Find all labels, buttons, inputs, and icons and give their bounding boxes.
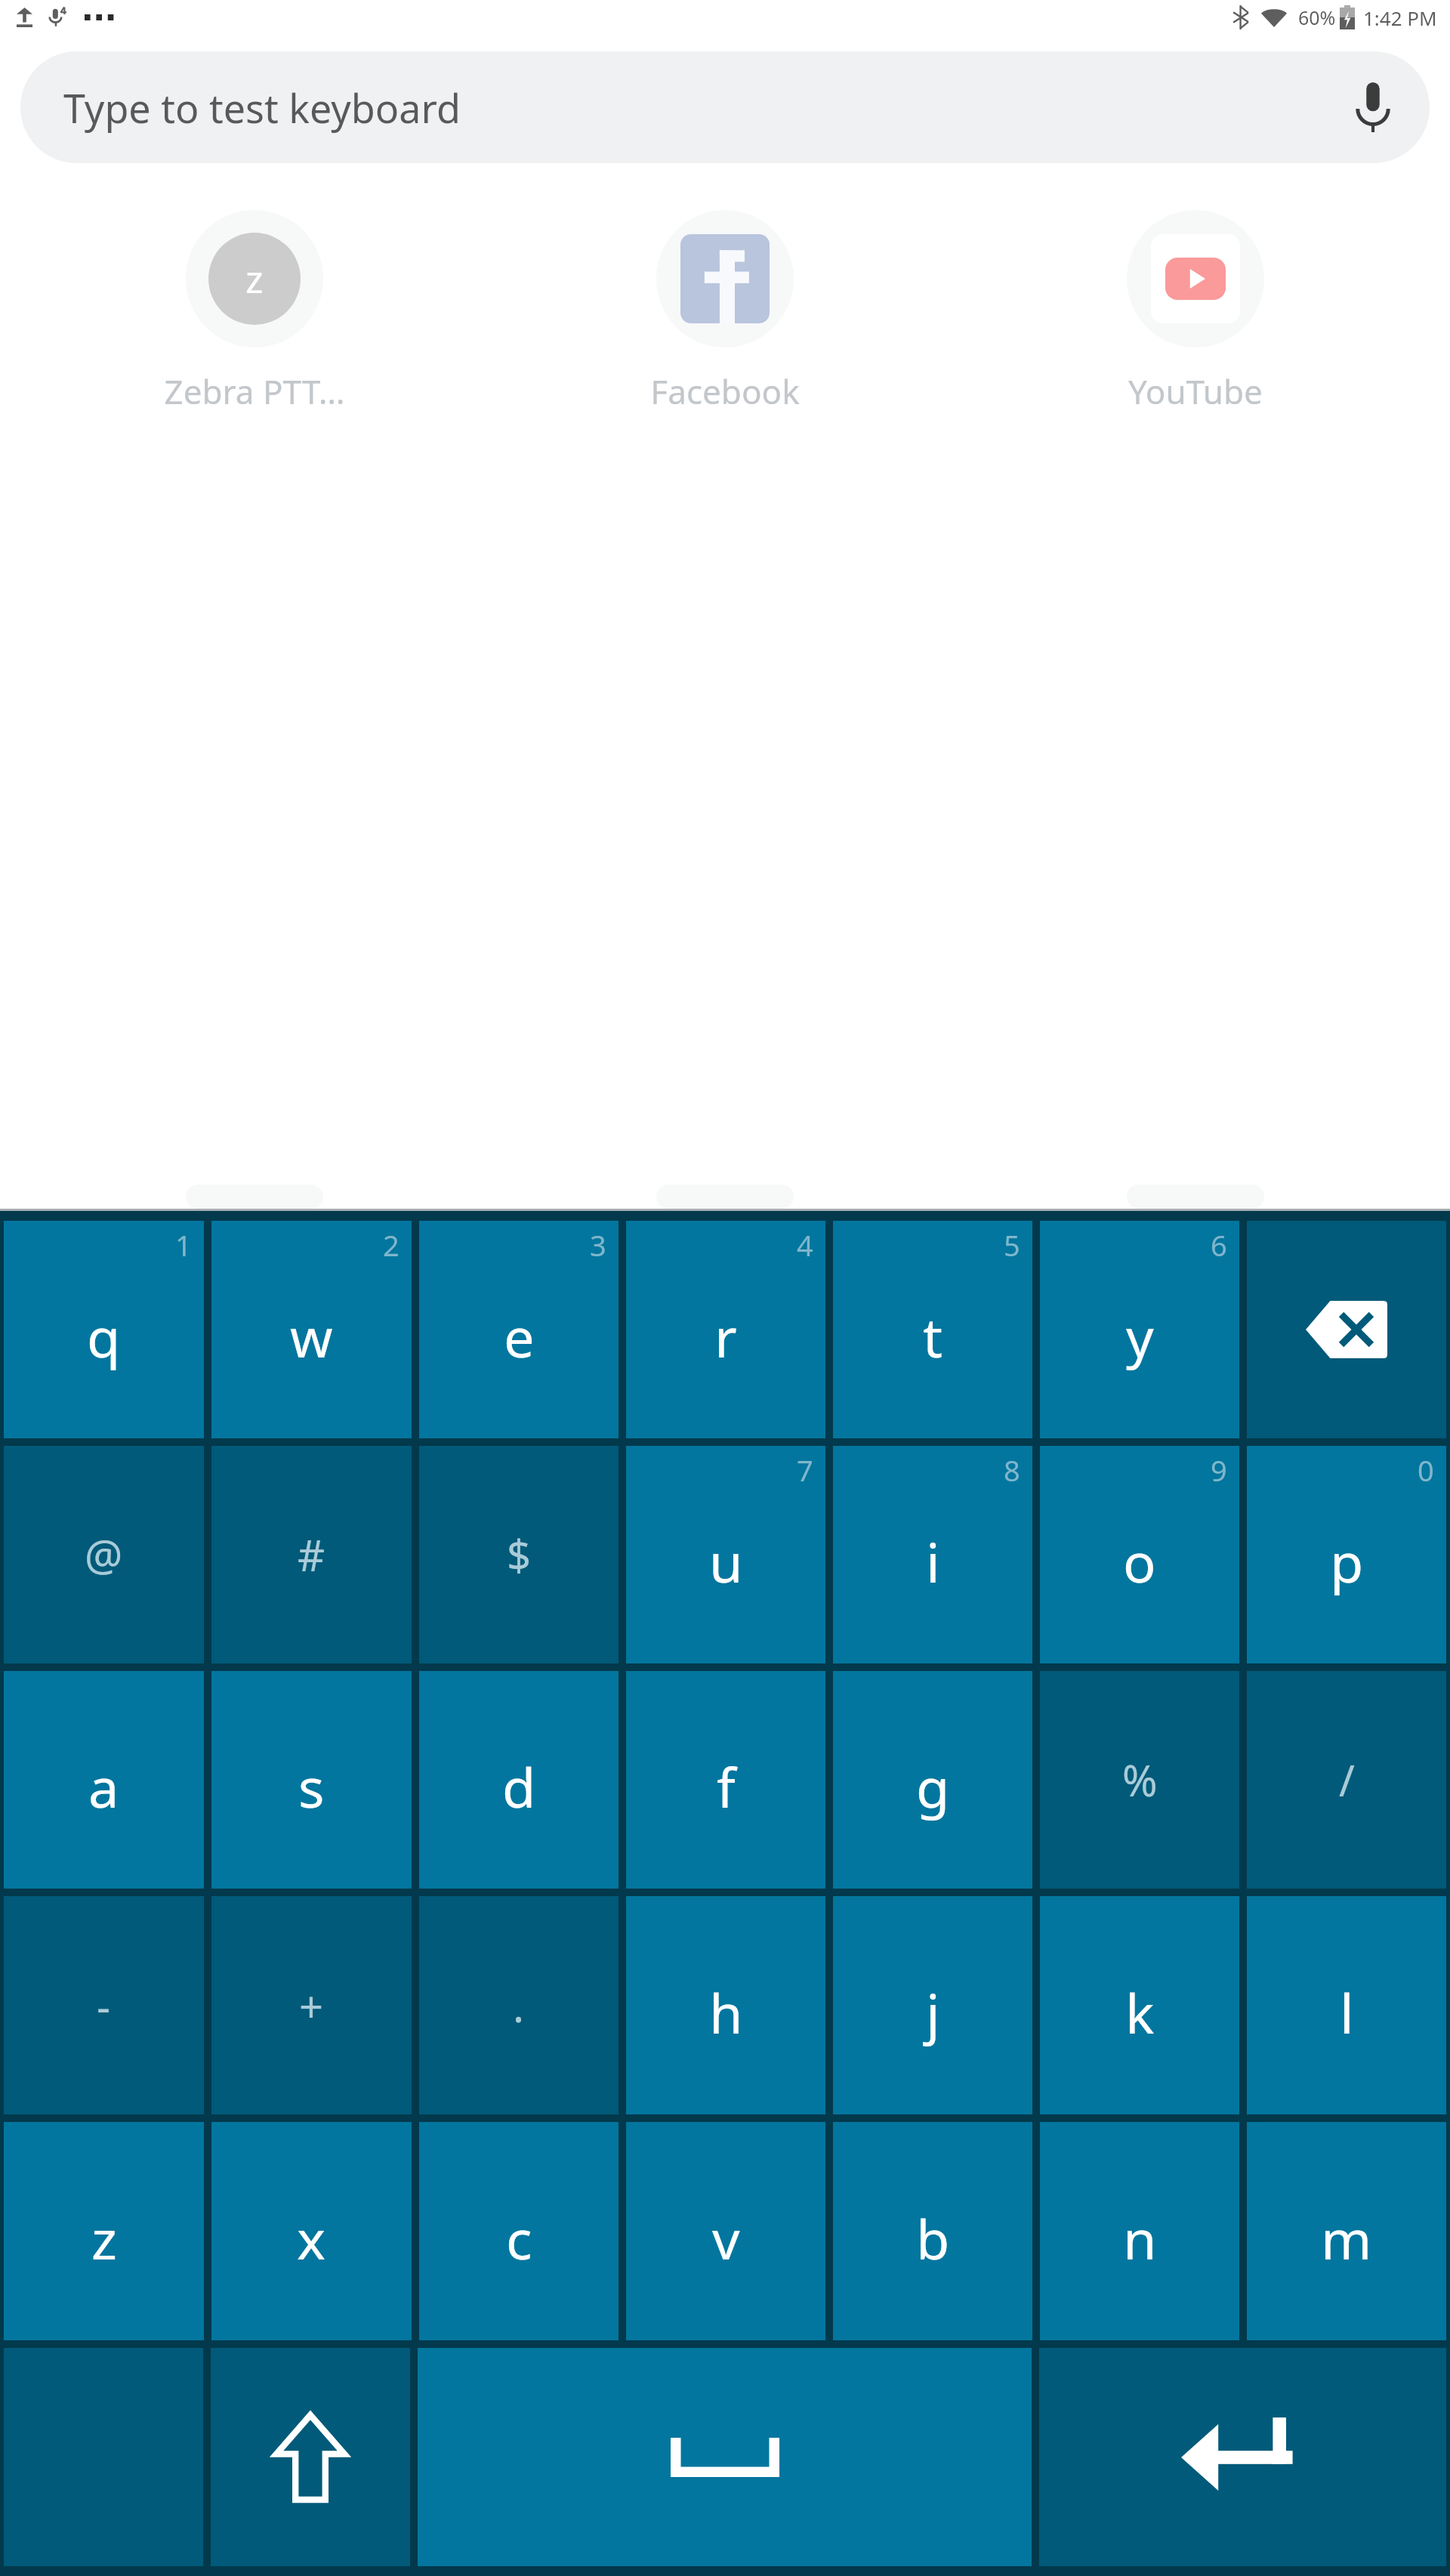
staticText: $ [507,1526,532,1583]
staticText: m [1321,2201,1372,2275]
button[interactable]: . [419,1896,619,2114]
button[interactable]: j [833,1896,1032,2114]
button[interactable]: $ [419,1446,619,1663]
staticText: . [513,1977,525,2034]
staticText: g [916,1750,950,1824]
button[interactable]: Type to test keyboard [20,51,1430,163]
button[interactable]: 2 [211,1221,412,1438]
staticText: u [709,1524,743,1598]
button[interactable]: 9 [1040,1446,1239,1663]
button[interactable]: / [1247,1671,1446,1889]
staticText: 1:42 PM [1363,5,1437,31]
button[interactable]: z [4,2122,204,2340]
button[interactable]: l [1247,1896,1446,2114]
button[interactable]: 4 [626,1221,825,1438]
button[interactable]: % [1040,1671,1239,1889]
staticText: - [97,1977,111,2034]
button[interactable]: 7 [626,1446,825,1663]
staticText: Type to test keyboard [63,81,461,134]
button[interactable]: 8 [833,1446,1032,1663]
button[interactable]: Shift [211,2348,410,2566]
staticText: p [1330,1524,1364,1598]
button[interactable]: 5 [833,1221,1032,1438]
staticText: # [298,1526,325,1583]
staticText: b [916,2201,950,2275]
staticText: Zebra PTT… [164,369,345,414]
button[interactable]: n [1040,2122,1239,2340]
staticText: z [91,2201,117,2275]
staticText: i [926,1524,940,1598]
button[interactable]: v [626,2122,825,2340]
staticText: l [1340,1975,1354,2049]
staticText: j [926,1975,940,2049]
button[interactable]: b [833,2122,1032,2340]
button[interactable]: Voice search [1356,51,1390,163]
button[interactable]: c [419,2122,619,2340]
staticText: t [923,1299,942,1373]
staticText: 3 [590,1225,606,1265]
staticText: o [1123,1524,1156,1598]
button[interactable]: g [833,1671,1032,1889]
staticText: k [1125,1975,1155,2049]
staticText: 60% [1298,5,1336,30]
button[interactable]: @ [4,1446,204,1663]
staticText: f [717,1750,736,1824]
button[interactable]: 3 [419,1221,619,1438]
button[interactable]: Backspace [1247,1221,1446,1438]
staticText: @ [85,1526,123,1583]
staticText: 6 [1211,1225,1227,1265]
staticText: 5 [1004,1225,1020,1265]
button[interactable]: h [626,1896,825,2114]
staticText: z [245,253,264,304]
button[interactable]: f [626,1671,825,1889]
button[interactable]: x [211,2122,412,2340]
staticText: Facebook [650,369,800,414]
button[interactable]: a [4,1671,204,1889]
button[interactable]: # [211,1446,412,1663]
button[interactable]: z [20,210,489,414]
staticText: 0 [1418,1450,1434,1490]
button[interactable]: d [419,1671,619,1889]
staticText: q [87,1299,121,1373]
button[interactable]: Enter [1039,2348,1446,2566]
staticText: h [709,1975,743,2049]
button[interactable]: m [1247,2122,1446,2340]
staticText: 7 [797,1450,813,1490]
button[interactable]: 0 [1247,1446,1446,1663]
button[interactable]: 6 [1040,1221,1239,1438]
button[interactable]: Space [418,2348,1032,2566]
button[interactable]: + [211,1896,412,2114]
button[interactable]: YouTube [960,210,1430,414]
staticText: x [297,2201,326,2275]
button[interactable]: - [4,1896,204,2114]
staticText: a [88,1750,119,1824]
staticText: % [1122,1751,1158,1808]
staticText: 8 [1004,1450,1020,1490]
staticText: YouTube [1128,369,1263,414]
staticText: c [506,2201,532,2275]
staticText: 9 [1211,1450,1227,1490]
staticText: n [1123,2201,1157,2275]
staticText: 1 [175,1225,192,1265]
button[interactable]: s [211,1671,412,1889]
staticText: / [1339,1751,1355,1808]
staticText: e [504,1299,535,1373]
staticText: 4 [797,1225,813,1265]
staticText: r [714,1299,737,1373]
staticText: d [502,1750,536,1824]
button[interactable]: 1 [4,1221,204,1438]
button[interactable]: k [1040,1896,1239,2114]
button[interactable]: Facebook [489,210,960,414]
staticText: v [712,2201,740,2275]
staticText: + [299,1977,324,2034]
staticText: w [290,1299,333,1373]
staticText: s [298,1750,325,1824]
staticText: y [1126,1299,1154,1373]
staticText: 2 [383,1225,400,1265]
